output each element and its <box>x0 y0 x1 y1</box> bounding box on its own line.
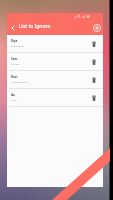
button[interactable]: Sam <box>7 53 103 71</box>
staticText: Aa <box>11 93 15 97</box>
staticText: 921789 <box>11 63 19 66</box>
staticText: 12311 <box>11 99 18 102</box>
button[interactable]: Delete <box>89 75 99 85</box>
staticText: List to Ignore <box>19 23 51 30</box>
button[interactable]: Back <box>7 20 19 35</box>
staticText: Ravi <box>11 75 18 79</box>
staticText: Sam <box>11 57 18 61</box>
staticText: Riya <box>11 39 18 43</box>
button[interactable]: Ravi <box>7 71 103 89</box>
button[interactable]: Delete <box>89 93 99 103</box>
staticText: 7406805443 <box>11 45 25 48</box>
button[interactable]: Delete <box>89 57 99 67</box>
staticText: +918050615310 <box>11 81 29 84</box>
button[interactable]: Add <box>90 21 103 34</box>
button[interactable]: Delete <box>89 39 99 49</box>
button[interactable]: Riya <box>7 35 103 53</box>
button[interactable]: Aa <box>7 89 103 107</box>
